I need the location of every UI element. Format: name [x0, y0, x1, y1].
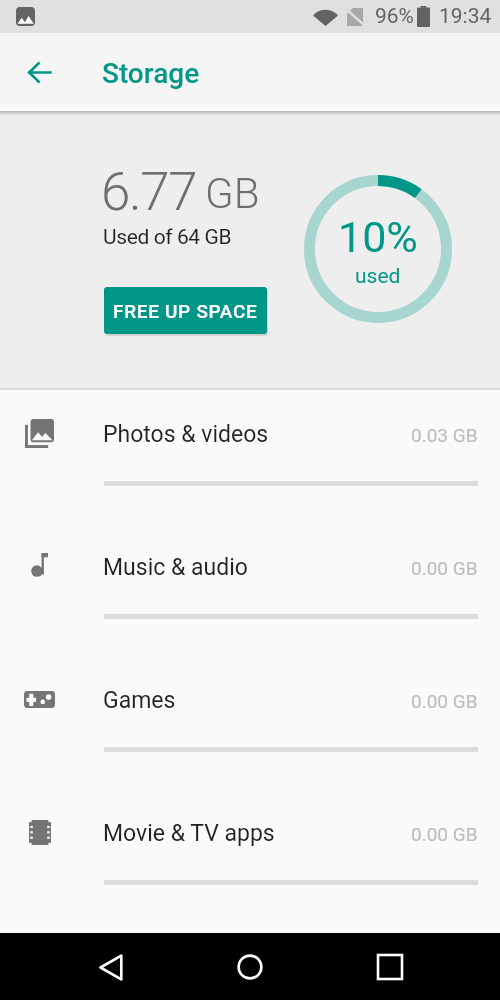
- staticText: 0.00 GB: [411, 557, 478, 579]
- staticText: 19:34: [439, 4, 492, 29]
- button[interactable]: Recent apps: [361, 938, 419, 996]
- staticText: Photos & videos: [103, 421, 269, 448]
- staticText: Storage: [102, 57, 200, 90]
- button[interactable]: Home: [221, 938, 279, 996]
- staticText: GB: [205, 169, 260, 218]
- staticText: Movie & TV apps: [103, 820, 275, 847]
- button[interactable]: Back: [11, 44, 67, 100]
- staticText: 0.03 GB: [411, 424, 478, 446]
- staticText: 0.00 GB: [411, 823, 478, 845]
- staticText: used: [355, 264, 401, 289]
- button[interactable]: Music & audio: [0, 523, 500, 656]
- staticText: 0.00 GB: [411, 690, 478, 712]
- staticText: Games: [103, 687, 176, 714]
- staticText: Music & audio: [103, 554, 248, 581]
- button[interactable]: FREE UP SPACE: [104, 287, 267, 334]
- staticText: 10%: [338, 212, 418, 262]
- button[interactable]: Back: [82, 938, 140, 996]
- button[interactable]: Movie & TV apps: [0, 789, 500, 922]
- button[interactable]: Photos & videos: [0, 390, 500, 523]
- button[interactable]: Games: [0, 656, 500, 789]
- staticText: FREE UP SPACE: [113, 300, 258, 322]
- staticText: 6.77: [101, 161, 197, 223]
- staticText: 96%: [375, 4, 414, 29]
- staticText: Used of 64 GB: [103, 225, 232, 250]
